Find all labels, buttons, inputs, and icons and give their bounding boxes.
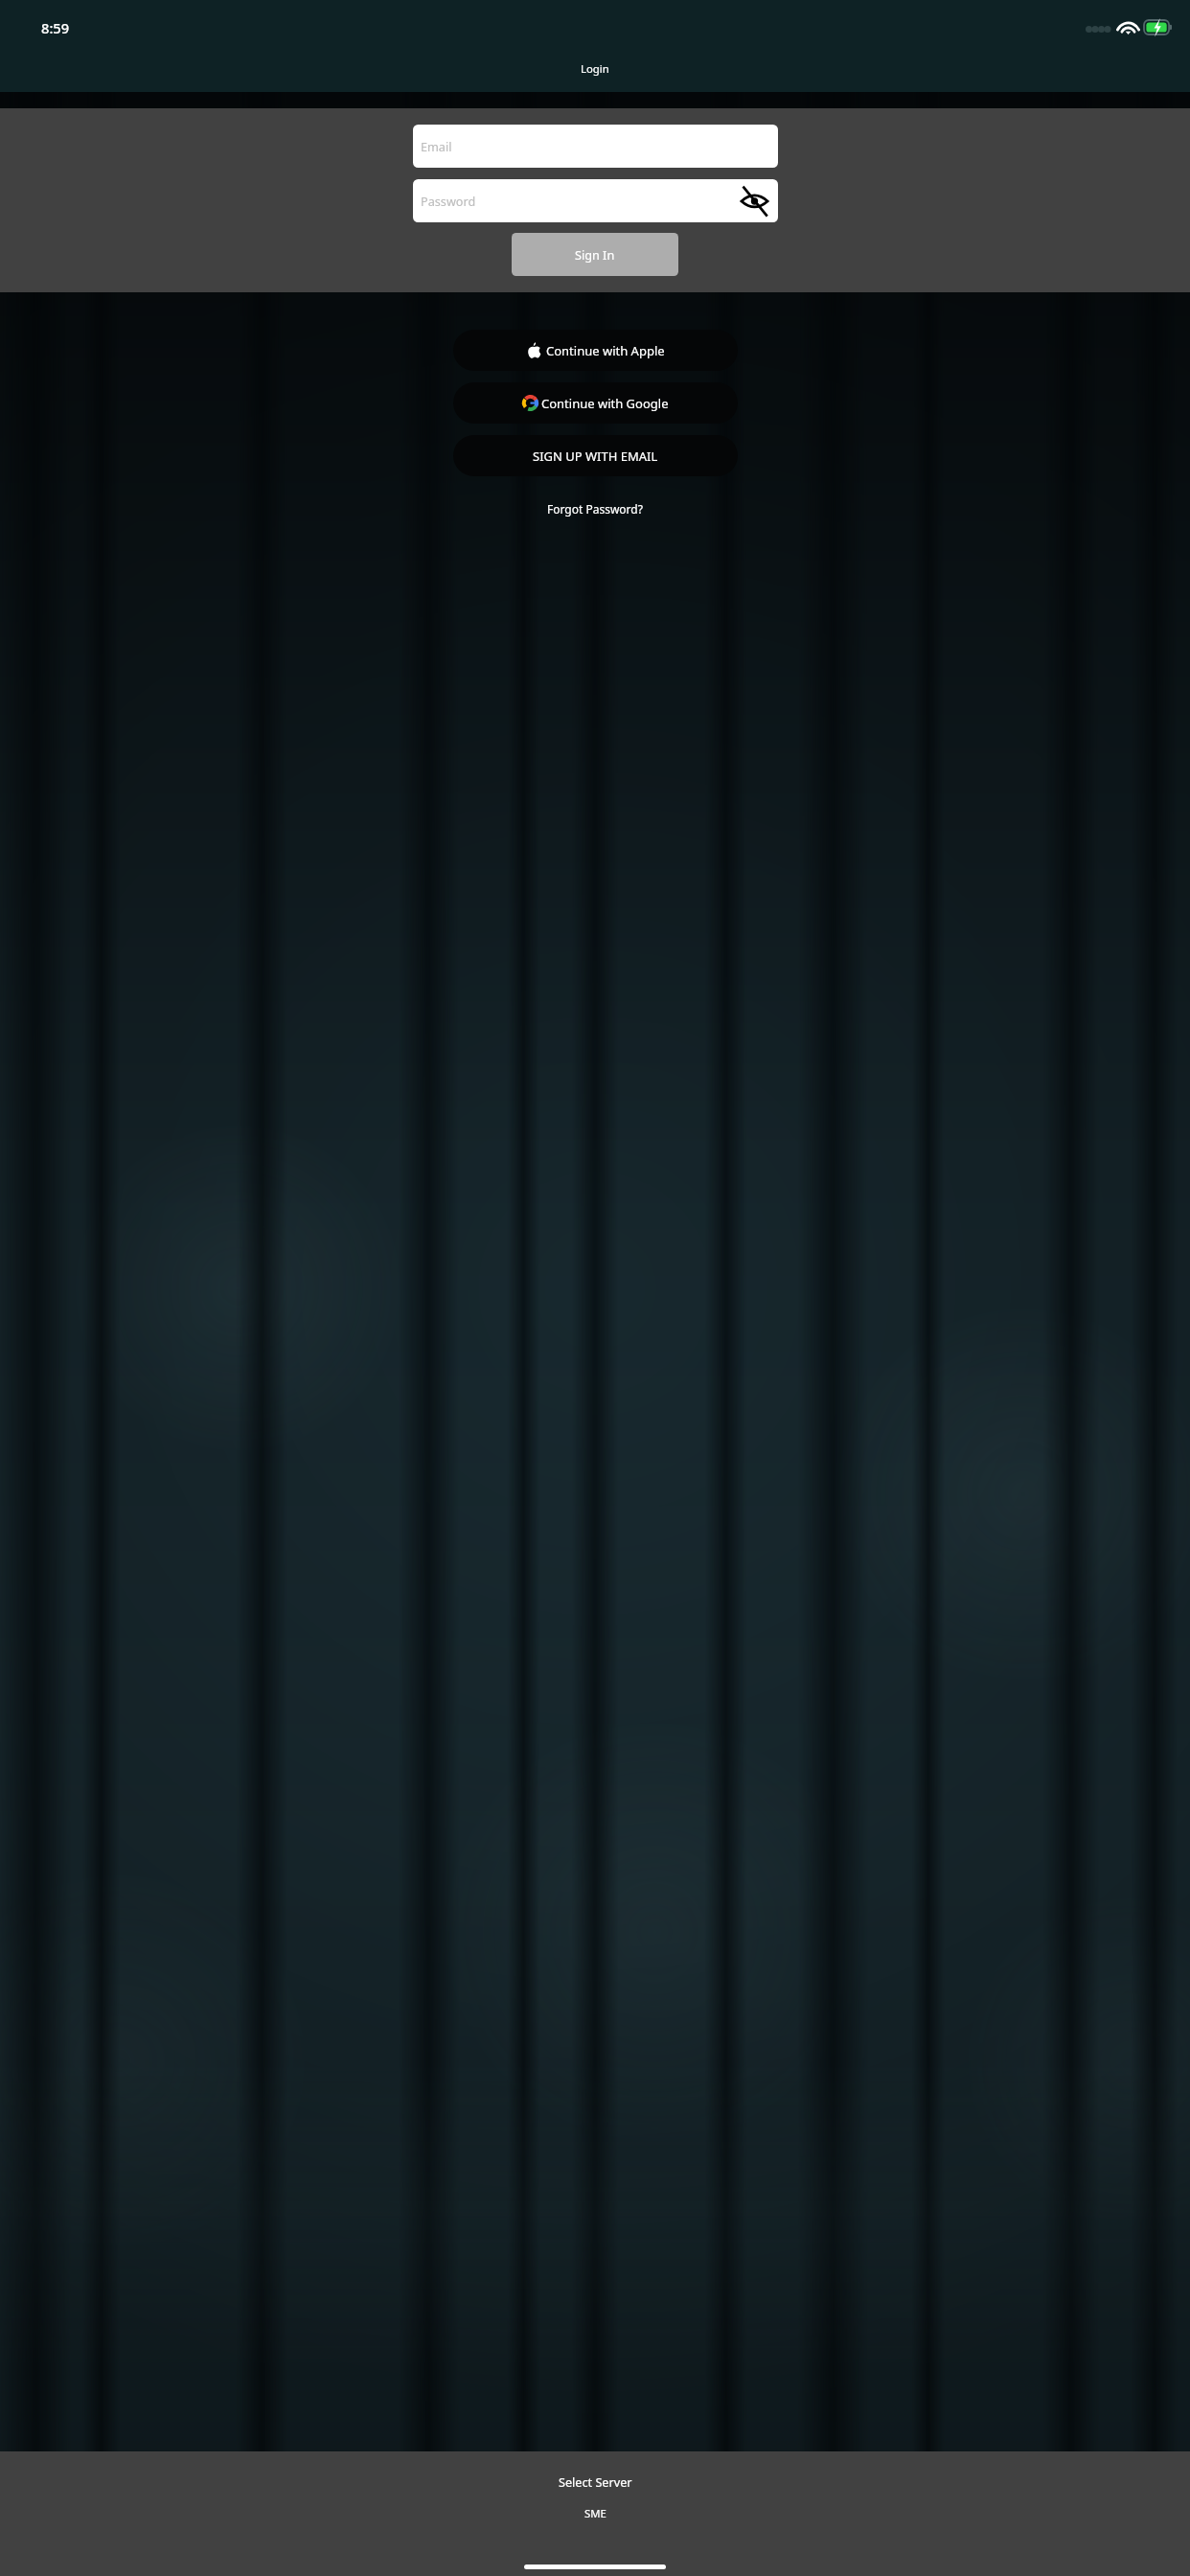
staticText: Continue with Google [541,395,669,412]
staticText: Forgot Password? [547,501,643,517]
staticText: SME [584,2506,606,2520]
staticText: Email [421,138,452,154]
button[interactable]: Sign In [512,233,678,276]
button[interactable]: Select Server [551,2472,640,2492]
button[interactable]: Continue with Apple [453,330,738,371]
button[interactable]: Continue with Google [453,382,738,424]
staticText: Continue with Apple [546,342,665,359]
button[interactable]: Email [413,125,778,168]
button[interactable]: SIGN UP WITH EMAIL [453,435,738,476]
button[interactable]: Password [413,179,778,222]
staticText: 8:59 [41,18,70,37]
button[interactable]: Show password [739,188,769,214]
staticText: SIGN UP WITH EMAIL [533,448,658,465]
staticText: Sign In [575,246,615,263]
button[interactable]: SME [577,2504,614,2522]
button[interactable]: Forgot Password? [540,498,650,519]
staticText: Select Server [559,2473,632,2490]
staticText: Login [581,61,609,76]
staticText: Password [421,193,476,209]
